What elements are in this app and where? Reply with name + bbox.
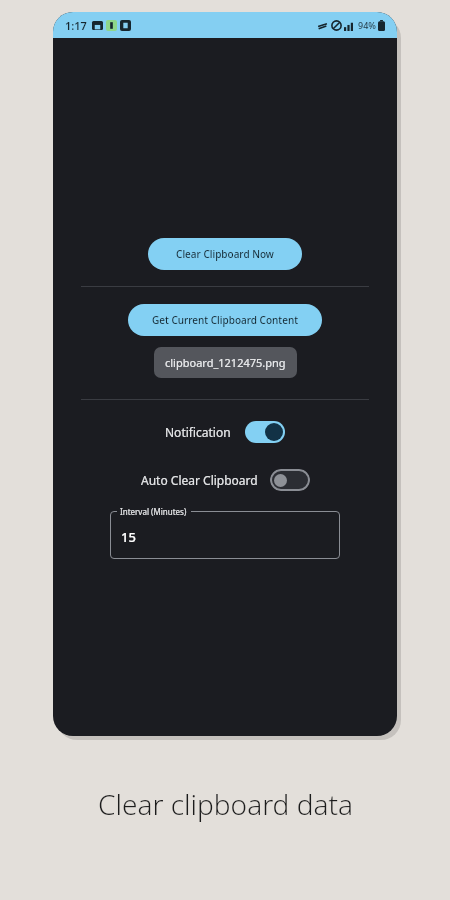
staticText: 1:17 [65,18,87,33]
staticText: Interval (Minutes) [120,506,187,517]
staticText: 15 [121,528,136,546]
staticText: Notification [165,424,231,440]
button[interactable]: Clear Clipboard Now [148,238,302,270]
staticText: clipboard_1212475.png [165,355,286,370]
staticText: Get Current Clipboard Content [152,313,298,327]
button[interactable] [110,511,340,559]
button[interactable]: clipboard_1212475.png [154,347,297,378]
staticText: Clear Clipboard Now [176,247,274,261]
button[interactable]: Notification toggle, on [245,421,285,443]
staticText: 94% [358,19,376,31]
staticText: Clear clipboard data [98,785,353,823]
staticText: Auto Clear Clipboard [141,472,258,488]
button[interactable]: Get Current Clipboard Content [128,304,322,336]
button[interactable]: Auto Clear Clipboard [53,465,397,495]
button[interactable]: Notification [53,417,397,447]
button[interactable]: Auto clear clipboard toggle, off [270,469,310,491]
